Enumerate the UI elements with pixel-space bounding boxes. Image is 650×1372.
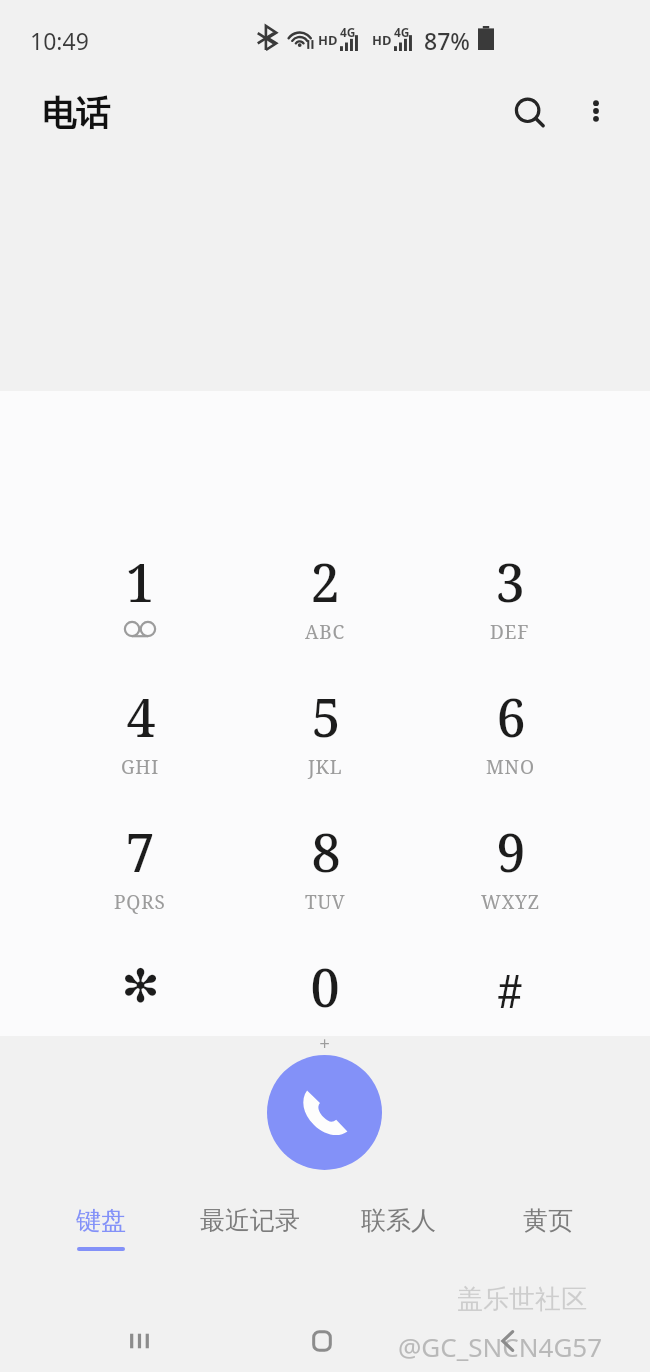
button[interactable]: 9 <box>425 816 595 936</box>
button[interactable]: ✻ <box>55 959 225 1079</box>
button[interactable]: 最近记录 <box>175 1205 325 1275</box>
staticText: + <box>319 1030 331 1057</box>
staticText: DEF <box>490 619 530 645</box>
staticText: PQRS <box>114 889 166 915</box>
staticText: ABC <box>305 619 345 645</box>
button[interactable]: Recents <box>105 1306 175 1372</box>
button[interactable]: 3 <box>425 546 595 666</box>
staticText: 黄页 <box>523 1205 573 1236</box>
staticText: 电话 <box>42 92 110 135</box>
staticText: 4 <box>126 681 156 752</box>
staticText: 4G <box>394 24 410 40</box>
button[interactable]: 4 <box>55 681 225 801</box>
staticText: HD <box>318 31 338 49</box>
staticText: 1 <box>125 546 155 617</box>
staticText: WXYZ <box>481 889 540 915</box>
staticText: 2 <box>310 546 340 617</box>
staticText: TUV <box>305 889 346 915</box>
button[interactable]: Home <box>287 1306 357 1372</box>
button[interactable]: 7 <box>55 816 225 936</box>
staticText: HD <box>372 31 392 49</box>
staticText: @GC_SNCN4G57 <box>398 1329 603 1364</box>
staticText: ✻ <box>121 959 160 1013</box>
staticText: 5 <box>311 681 341 752</box>
button[interactable]: 8 <box>240 816 410 936</box>
staticText: 7 <box>125 816 155 887</box>
staticText: 10:49 <box>30 25 89 56</box>
button[interactable]: # <box>425 959 595 1079</box>
staticText: 键盘 <box>76 1205 126 1236</box>
staticText: GHI <box>121 754 160 780</box>
staticText: JKL <box>308 754 343 780</box>
button[interactable]: Back <box>473 1306 543 1372</box>
button[interactable]: Search <box>498 81 562 145</box>
button[interactable]: 2 <box>240 546 410 666</box>
staticText: 联系人 <box>361 1205 436 1236</box>
staticText: 最近记录 <box>200 1205 300 1236</box>
button[interactable]: 5 <box>240 681 410 801</box>
button[interactable]: Call <box>267 1055 382 1170</box>
button[interactable]: More options <box>566 81 626 141</box>
button[interactable]: 黄页 <box>473 1205 623 1275</box>
staticText: 87% <box>424 25 470 56</box>
staticText: 9 <box>496 816 526 887</box>
staticText: 6 <box>496 681 526 752</box>
button[interactable]: 键盘 <box>26 1205 176 1275</box>
button[interactable]: 6 <box>425 681 595 801</box>
staticText: 3 <box>495 546 525 617</box>
staticText: 8 <box>311 816 341 887</box>
button[interactable]: 1 <box>55 546 225 666</box>
staticText: # <box>497 959 523 1022</box>
button[interactable]: 联系人 <box>323 1205 473 1275</box>
staticText: 4G <box>340 24 356 40</box>
staticText: 0 <box>310 951 340 1022</box>
staticText: 盖乐世社区 <box>457 1283 587 1316</box>
staticText: MNO <box>486 754 535 780</box>
button[interactable]: 0 <box>240 951 410 1071</box>
